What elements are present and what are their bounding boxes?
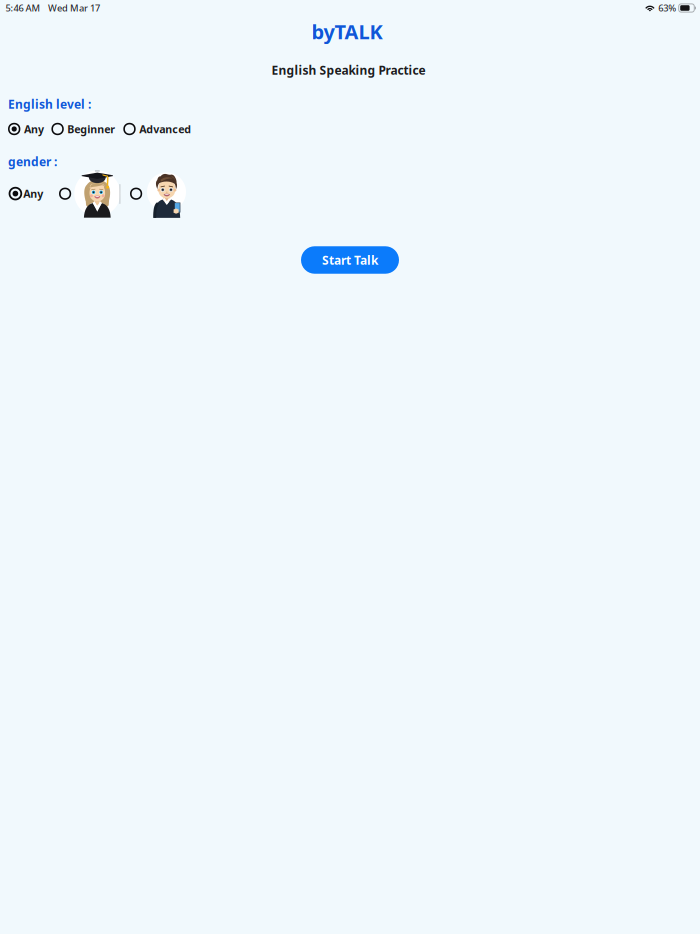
staticText: Wed Mar 17 — [48, 2, 100, 14]
button[interactable]: Any — [9, 186, 69, 201]
staticText: Any — [23, 186, 43, 201]
button[interactable]: Male tutor — [147, 169, 187, 219]
staticText: Start Talk — [322, 252, 378, 268]
button[interactable]: Advanced — [123, 122, 191, 136]
button[interactable]: Any — [8, 122, 44, 136]
button[interactable]: Beginner — [51, 122, 115, 136]
staticText: 5:46 AM — [5, 2, 40, 14]
staticText: Beginner — [67, 122, 115, 136]
staticText: Any — [24, 122, 44, 136]
button[interactable]: Choose male tutor — [130, 188, 142, 200]
staticText: English level : — [8, 96, 91, 112]
staticText: English Speaking Practice — [271, 62, 425, 78]
button[interactable]: Female tutor — [74, 169, 120, 219]
staticText: Advanced — [139, 122, 191, 136]
staticText: byTALK — [311, 18, 382, 45]
staticText: gender : — [8, 153, 57, 169]
staticText: 63% — [658, 2, 676, 14]
button[interactable]: Start Talk — [301, 246, 399, 274]
button[interactable]: Choose female tutor — [59, 188, 71, 200]
